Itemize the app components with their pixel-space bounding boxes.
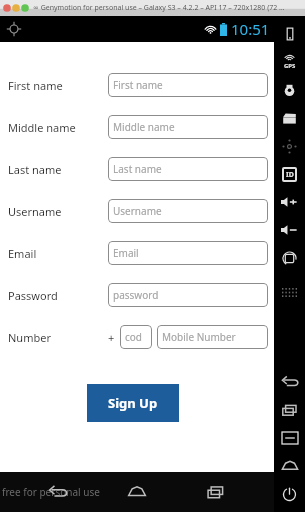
staticText: + [108, 330, 115, 345]
staticText: First name [8, 78, 108, 93]
staticText: ID [286, 170, 294, 180]
button[interactable]: First name [108, 73, 268, 97]
button[interactable]: Middle name [108, 115, 268, 139]
button[interactable]: Volume down [274, 216, 305, 244]
staticText: Mobile Number [162, 330, 236, 344]
button[interactable]: Video [274, 104, 305, 132]
button[interactable]: Username [108, 199, 268, 223]
staticText: Number [8, 330, 108, 345]
button[interactable]: Rotate [274, 244, 305, 272]
staticText: GPS [284, 62, 296, 70]
staticText: Middle name [113, 120, 175, 134]
staticText: password [113, 288, 159, 302]
button[interactable]: Camera [274, 76, 305, 104]
button[interactable]: Device [274, 20, 305, 48]
button[interactable]: Home [274, 452, 305, 480]
button[interactable]: Email [108, 241, 268, 265]
button[interactable]: D-pad [274, 132, 305, 160]
button[interactable]: Sign Up [87, 384, 179, 422]
button[interactable]: ID [274, 160, 305, 188]
button[interactable]: Last name [108, 157, 268, 181]
button[interactable]: Keyboard [274, 278, 305, 306]
staticText: ∞ Genymotion for personal use – Galaxy S… [33, 3, 285, 13]
button[interactable]: Recent apps [195, 472, 237, 512]
staticText: 10:51 [231, 19, 270, 39]
button[interactable]: GPS [274, 48, 305, 76]
button[interactable]: Volume up [274, 188, 305, 216]
staticText: Last name [8, 162, 108, 177]
staticText: Password [8, 288, 108, 303]
button[interactable]: code [120, 325, 152, 349]
button[interactable]: Mobile Number [157, 325, 268, 349]
button[interactable]: Power [274, 480, 305, 508]
staticText: Sign Up [108, 394, 158, 412]
staticText: Last name [113, 162, 162, 176]
button[interactable]: Menu [274, 424, 305, 452]
staticText: Middle name [8, 120, 108, 135]
staticText: First name [113, 78, 163, 92]
staticText: code [125, 330, 147, 344]
staticText: Username [8, 204, 108, 219]
button[interactable]: Home [116, 472, 158, 512]
staticText: Username [113, 204, 162, 218]
button[interactable]: Back [274, 368, 305, 396]
button[interactable]: password [108, 283, 268, 307]
staticText: free for personal use [2, 485, 100, 499]
button[interactable]: Back [37, 472, 79, 512]
button[interactable]: Recent apps [274, 396, 305, 424]
staticText: Email [113, 246, 139, 260]
staticText: Email [8, 246, 108, 261]
